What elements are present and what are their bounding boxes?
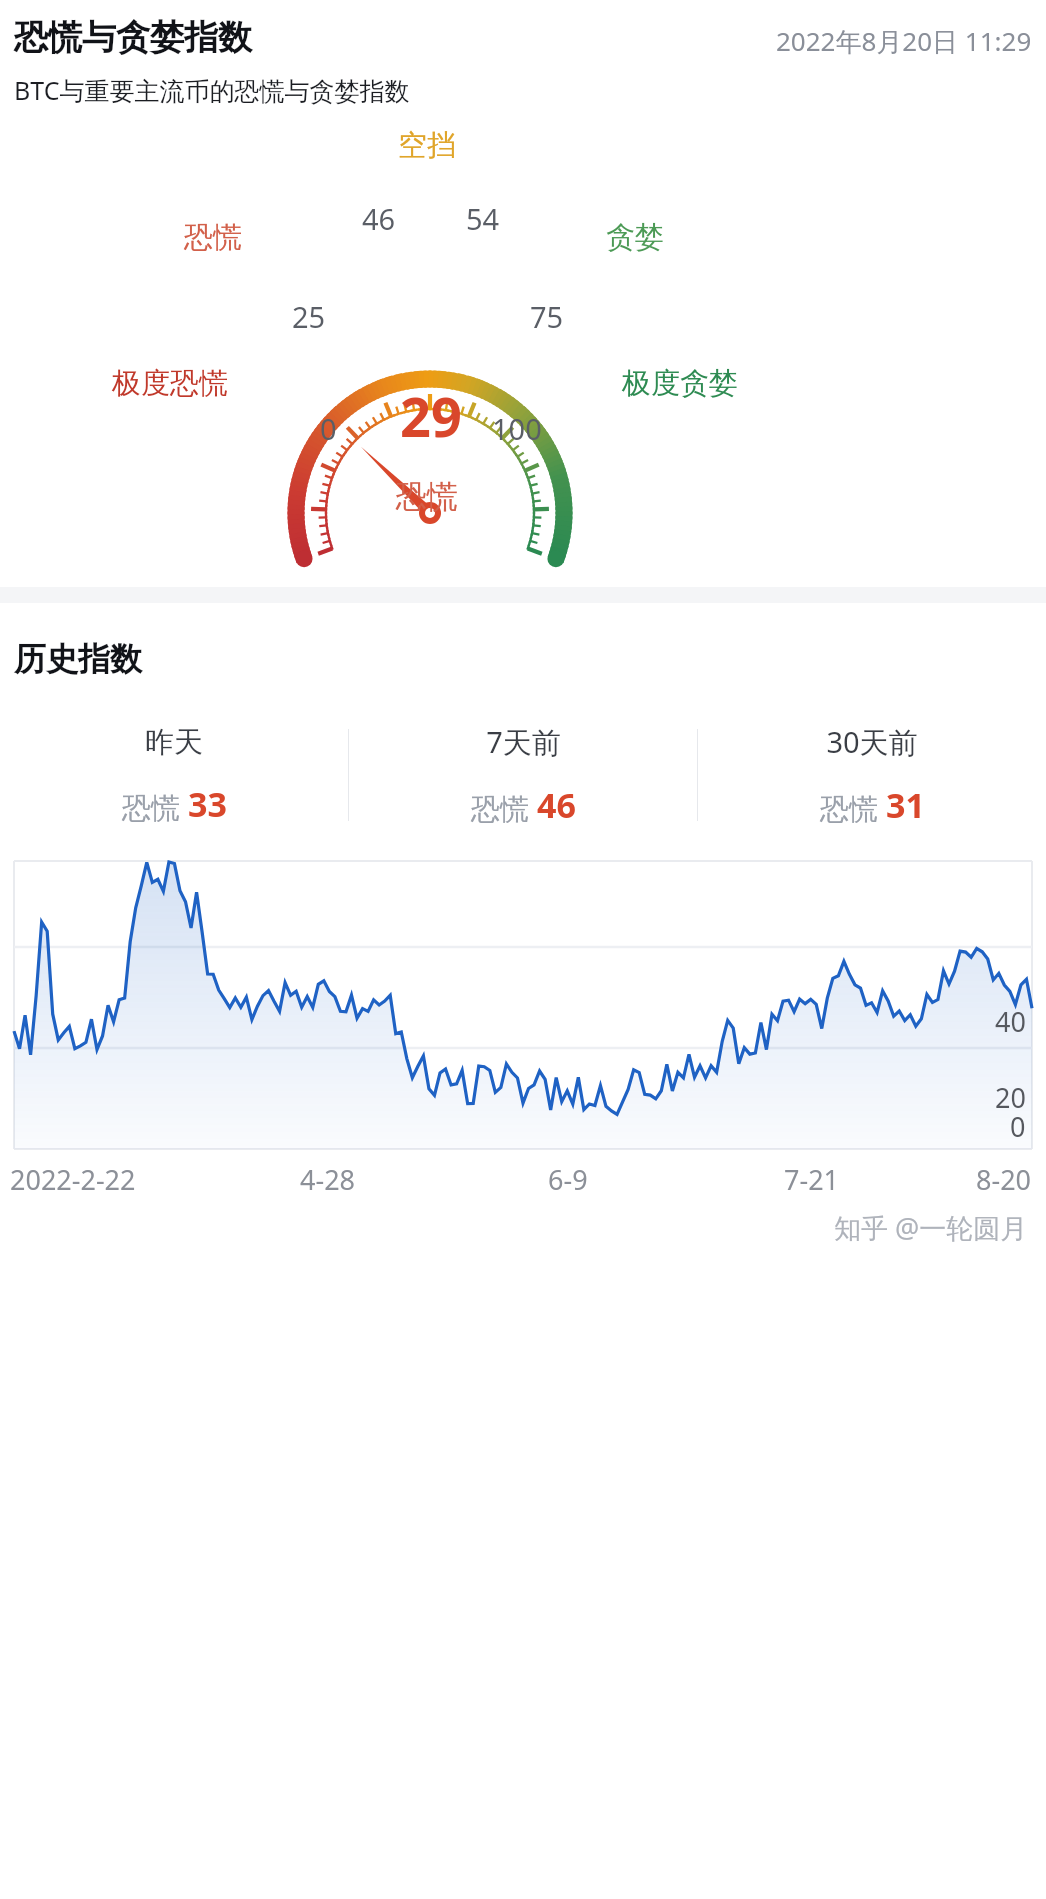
staticText: 29 xyxy=(400,379,462,453)
staticText: 恐慌 xyxy=(820,791,878,828)
staticText: 恐慌 xyxy=(471,791,529,828)
staticText: 33 xyxy=(188,781,227,827)
staticText: 0 xyxy=(1010,1108,1026,1145)
staticText: 54 xyxy=(466,199,500,238)
staticText: 昨天 xyxy=(145,724,203,761)
staticText: 6-9 xyxy=(548,1161,588,1198)
staticText: 历史指数 xyxy=(14,639,142,679)
staticText: 2022-2-22 xyxy=(10,1161,136,1198)
staticText: 40 xyxy=(995,1003,1026,1040)
button[interactable]: 7天前 xyxy=(349,722,697,828)
staticText: 100 xyxy=(492,409,542,448)
staticText: 25 xyxy=(292,297,326,336)
button[interactable]: 昨天 xyxy=(0,724,348,827)
staticText: 30天前 xyxy=(826,722,918,762)
staticText: 知乎 @一轮圆月 xyxy=(834,1209,1028,1246)
staticText: 恐慌 xyxy=(122,790,180,827)
staticText: 8-20 xyxy=(976,1161,1032,1198)
staticText: 46 xyxy=(362,199,396,238)
staticText: 恐慌 xyxy=(396,477,458,516)
staticText: 31 xyxy=(886,782,925,828)
staticText: 极度恐慌 xyxy=(112,365,228,402)
staticText: 2022年8月20日 11:29 xyxy=(776,23,1032,59)
button[interactable]: 30天前 xyxy=(698,722,1046,828)
staticText: 恐慌与贪婪指数 xyxy=(14,16,252,59)
staticText: 75 xyxy=(530,297,564,336)
staticText: 20 xyxy=(995,1079,1026,1116)
staticText: 7-21 xyxy=(784,1161,840,1198)
staticText: 46 xyxy=(537,782,576,828)
staticText: 0 xyxy=(320,409,337,448)
staticText: BTC与重要主流币的恐慌与贪婪指数 xyxy=(14,73,410,107)
staticText: 恐慌 xyxy=(184,219,242,256)
staticText: 贪婪 xyxy=(606,219,664,256)
staticText: 空挡 xyxy=(398,127,456,164)
staticText: 极度贪婪 xyxy=(622,365,738,402)
staticText: 4-28 xyxy=(300,1161,356,1198)
staticText: 7天前 xyxy=(486,722,561,762)
